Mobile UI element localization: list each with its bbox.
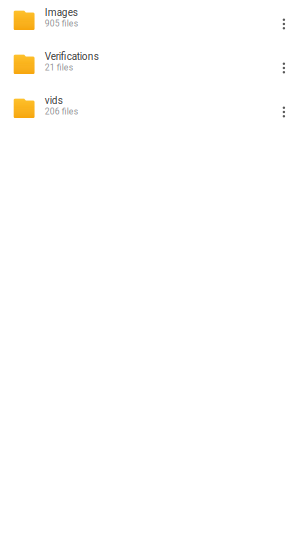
button[interactable]: More options for Images bbox=[272, 9, 296, 39]
button[interactable]: More options for Verifications bbox=[272, 53, 296, 83]
staticText: 206 files bbox=[45, 106, 78, 117]
button[interactable]: Verifications bbox=[0, 42, 272, 86]
staticText: Images bbox=[45, 7, 78, 18]
staticText: 21 files bbox=[45, 62, 73, 73]
staticText: vids bbox=[45, 95, 63, 106]
staticText: 905 files bbox=[45, 18, 78, 29]
button[interactable]: Images bbox=[0, 0, 272, 42]
staticText: Verifications bbox=[45, 51, 99, 62]
button[interactable]: vids bbox=[0, 86, 272, 130]
button[interactable]: More options for vids bbox=[272, 97, 296, 127]
